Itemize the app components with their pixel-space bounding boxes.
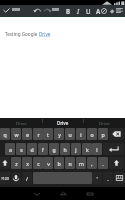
- staticText: Drive: [39, 31, 51, 37]
- button[interactable]: Recents: [81, 187, 98, 200]
- button[interactable]: .: [103, 172, 113, 184]
- button[interactable]: z: [11, 157, 21, 169]
- staticText: f: [42, 146, 44, 153]
- button[interactable]: y: [54, 128, 64, 140]
- staticText: i: [80, 131, 82, 138]
- staticText: .: [102, 160, 104, 167]
- staticText: A: [96, 7, 101, 15]
- staticText: w: [14, 131, 19, 138]
- button[interactable]: Drive: [83, 118, 125, 128]
- button[interactable]: Switch keyboard: [114, 172, 125, 184]
- button[interactable]: l: [92, 143, 102, 155]
- staticText: t: [47, 131, 49, 138]
- staticText: j: [75, 146, 77, 153]
- staticText: n: [68, 160, 72, 167]
- button[interactable]: Drive: [42, 118, 84, 128]
- button[interactable]: s: [16, 143, 26, 155]
- button[interactable]: Shift: [0, 157, 10, 169]
- button[interactable]: t: [43, 128, 53, 140]
- staticText: l: [96, 146, 98, 153]
- button[interactable]: Enter: [103, 143, 124, 155]
- staticText: U: [86, 7, 91, 15]
- button[interactable]: e: [22, 128, 32, 140]
- button[interactable]: b: [54, 157, 64, 169]
- button[interactable]: Undo: [33, 5, 42, 16]
- staticText: B: [66, 7, 71, 15]
- staticText: I: [77, 7, 80, 15]
- button[interactable]: Redo: [43, 5, 52, 16]
- button[interactable]: u: [65, 128, 75, 140]
- staticText: y: [58, 131, 61, 138]
- staticText: d: [30, 146, 34, 153]
- staticText: s: [20, 146, 23, 153]
- button[interactable]: h: [60, 143, 70, 155]
- button[interactable]: ?123: [0, 172, 10, 184]
- staticText: a: [9, 146, 12, 153]
- button[interactable]: r: [33, 128, 43, 140]
- button[interactable]: /: [22, 172, 32, 184]
- button[interactable]: A: [94, 5, 103, 16]
- staticText: m: [79, 160, 84, 167]
- staticText: b: [57, 160, 61, 167]
- button[interactable]: Shift: [109, 157, 124, 169]
- staticText: Drive: [99, 120, 110, 126]
- button[interactable]: Highlight colour: [106, 5, 117, 16]
- button[interactable]: p: [98, 128, 108, 140]
- staticText: p: [101, 131, 105, 138]
- staticText: .: [107, 175, 109, 182]
- button[interactable]: m: [76, 157, 86, 169]
- staticText: h: [63, 146, 67, 153]
- button[interactable]: B: [64, 5, 73, 16]
- button[interactable]: a: [5, 143, 15, 155]
- button[interactable]: I: [74, 5, 83, 16]
- button[interactable]: n: [65, 157, 75, 169]
- staticText: z: [15, 160, 18, 167]
- staticText: o: [90, 131, 94, 138]
- button[interactable]: x: [22, 157, 32, 169]
- staticText: /: [26, 175, 28, 182]
- button[interactable]: Back: [28, 187, 45, 200]
- button[interactable]: j: [71, 143, 81, 155]
- button[interactable]: Done: [1, 5, 12, 16]
- button[interactable]: v: [43, 157, 53, 169]
- button[interactable]: ': [92, 172, 102, 184]
- staticText: u: [68, 131, 72, 138]
- button[interactable]: U: [84, 5, 93, 16]
- button[interactable]: f: [38, 143, 48, 155]
- staticText: Drive: [57, 120, 69, 126]
- button[interactable]: ,: [87, 157, 97, 169]
- staticText: ?123: [1, 176, 9, 181]
- button[interactable]: k: [82, 143, 92, 155]
- staticText: x: [26, 160, 29, 167]
- button[interactable]: c: [33, 157, 43, 169]
- button[interactable]: Voice input: [11, 172, 21, 184]
- button[interactable]: Drive: [0, 118, 42, 128]
- button[interactable]: i: [76, 128, 86, 140]
- button[interactable]: Home: [55, 187, 72, 200]
- button[interactable]: w: [11, 128, 21, 140]
- staticText: k: [86, 146, 89, 153]
- staticText: q: [3, 131, 7, 138]
- staticText: ': [96, 175, 98, 182]
- button[interactable]: q: [0, 128, 10, 140]
- staticText: e: [26, 131, 29, 138]
- button[interactable]: .: [98, 157, 108, 169]
- button[interactable]: Text colour: [98, 5, 109, 16]
- staticText: Drive: [16, 120, 27, 126]
- button[interactable]: Align: [114, 5, 125, 16]
- staticText: g: [52, 146, 56, 153]
- button[interactable]: Backspace: [109, 128, 124, 140]
- staticText: ,: [91, 160, 93, 167]
- staticText: c: [37, 160, 40, 167]
- staticText: r: [37, 131, 40, 138]
- button[interactable]: g: [49, 143, 59, 155]
- button[interactable]: o: [87, 128, 97, 140]
- button[interactable]: d: [27, 143, 37, 155]
- staticText: Testing Google: [5, 31, 39, 37]
- staticText: v: [47, 160, 50, 167]
